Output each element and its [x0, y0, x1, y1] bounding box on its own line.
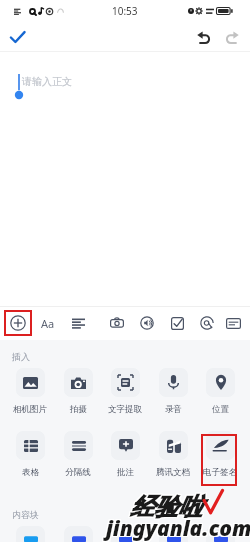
- button[interactable]: Font: [36, 311, 60, 335]
- staticText: 相机图片: [13, 404, 47, 415]
- staticText: 分隔线: [65, 467, 91, 478]
- button[interactable]: 表格: [9, 431, 51, 478]
- button[interactable]: 电子签名: [199, 431, 241, 478]
- staticText: jingyanla.com: [107, 515, 250, 542]
- button[interactable]: 录音: [152, 368, 194, 415]
- button[interactable]: 位置: [199, 368, 241, 415]
- staticText: jingyanla.com: [105, 514, 250, 542]
- button[interactable]: 分隔线: [57, 431, 99, 478]
- staticText: 批注: [117, 467, 134, 478]
- button[interactable]: 拍摄: [57, 368, 99, 415]
- staticText: jingyanla.com: [106, 514, 250, 542]
- staticText: Aa: [41, 316, 55, 331]
- staticText: 表格: [22, 467, 39, 478]
- staticText: 拍摄: [70, 404, 87, 415]
- staticText: 腾讯文档: [156, 467, 190, 478]
- staticText: 请输入正文: [22, 75, 72, 88]
- button[interactable]: Camera: [105, 311, 129, 335]
- staticText: 插入: [12, 351, 30, 362]
- button[interactable]: 引用: [152, 526, 194, 542]
- staticText: 10:53: [112, 4, 138, 18]
- staticText: 经验啦: [130, 492, 202, 522]
- staticText: 文字提取: [108, 404, 142, 415]
- button[interactable]: 公式: [199, 526, 241, 542]
- staticText: 经验啦: [131, 492, 203, 522]
- staticText: 经验啦: [130, 491, 202, 521]
- button[interactable]: Done: [4, 24, 30, 50]
- button[interactable]: Undo: [192, 25, 216, 49]
- staticText: jingyanla.com: [106, 513, 250, 542]
- button[interactable]: Insert: [6, 311, 30, 335]
- staticText: 电子签名: [203, 467, 237, 478]
- button[interactable]: 相机图片: [9, 368, 51, 415]
- staticText: 经验啦: [131, 493, 203, 523]
- staticText: 经验啦: [129, 491, 201, 521]
- staticText: 经验啦: [131, 491, 203, 521]
- button[interactable]: 批注: [104, 431, 146, 478]
- button[interactable]: Mention: [195, 311, 219, 335]
- button[interactable]: 腾讯文档: [152, 431, 194, 478]
- button[interactable]: Audio: [135, 311, 159, 335]
- button[interactable]: Todo: [165, 311, 189, 335]
- staticText: 位置: [212, 404, 229, 415]
- staticText: jingyanla.com: [107, 513, 250, 542]
- staticText: 经验啦: [130, 493, 202, 523]
- staticText: jingyanla.com: [107, 514, 250, 542]
- button[interactable]: Redo: [220, 25, 244, 49]
- staticText: jingyanla.com: [105, 513, 250, 542]
- staticText: 经验啦: [129, 493, 201, 523]
- staticText: 内容块: [12, 509, 39, 520]
- button[interactable]: Keyboard: [221, 311, 245, 335]
- staticText: jingyanla.com: [106, 515, 250, 542]
- button[interactable]: 文字提取: [104, 368, 146, 415]
- staticText: 经验啦: [129, 492, 201, 522]
- button[interactable]: 清单: [57, 526, 99, 542]
- staticText: 录音: [165, 404, 182, 415]
- button[interactable]: 待办: [9, 526, 51, 542]
- button[interactable]: Align: [66, 311, 90, 335]
- button[interactable]: 代码: [104, 526, 146, 542]
- staticText: jingyanla.com: [105, 515, 250, 542]
